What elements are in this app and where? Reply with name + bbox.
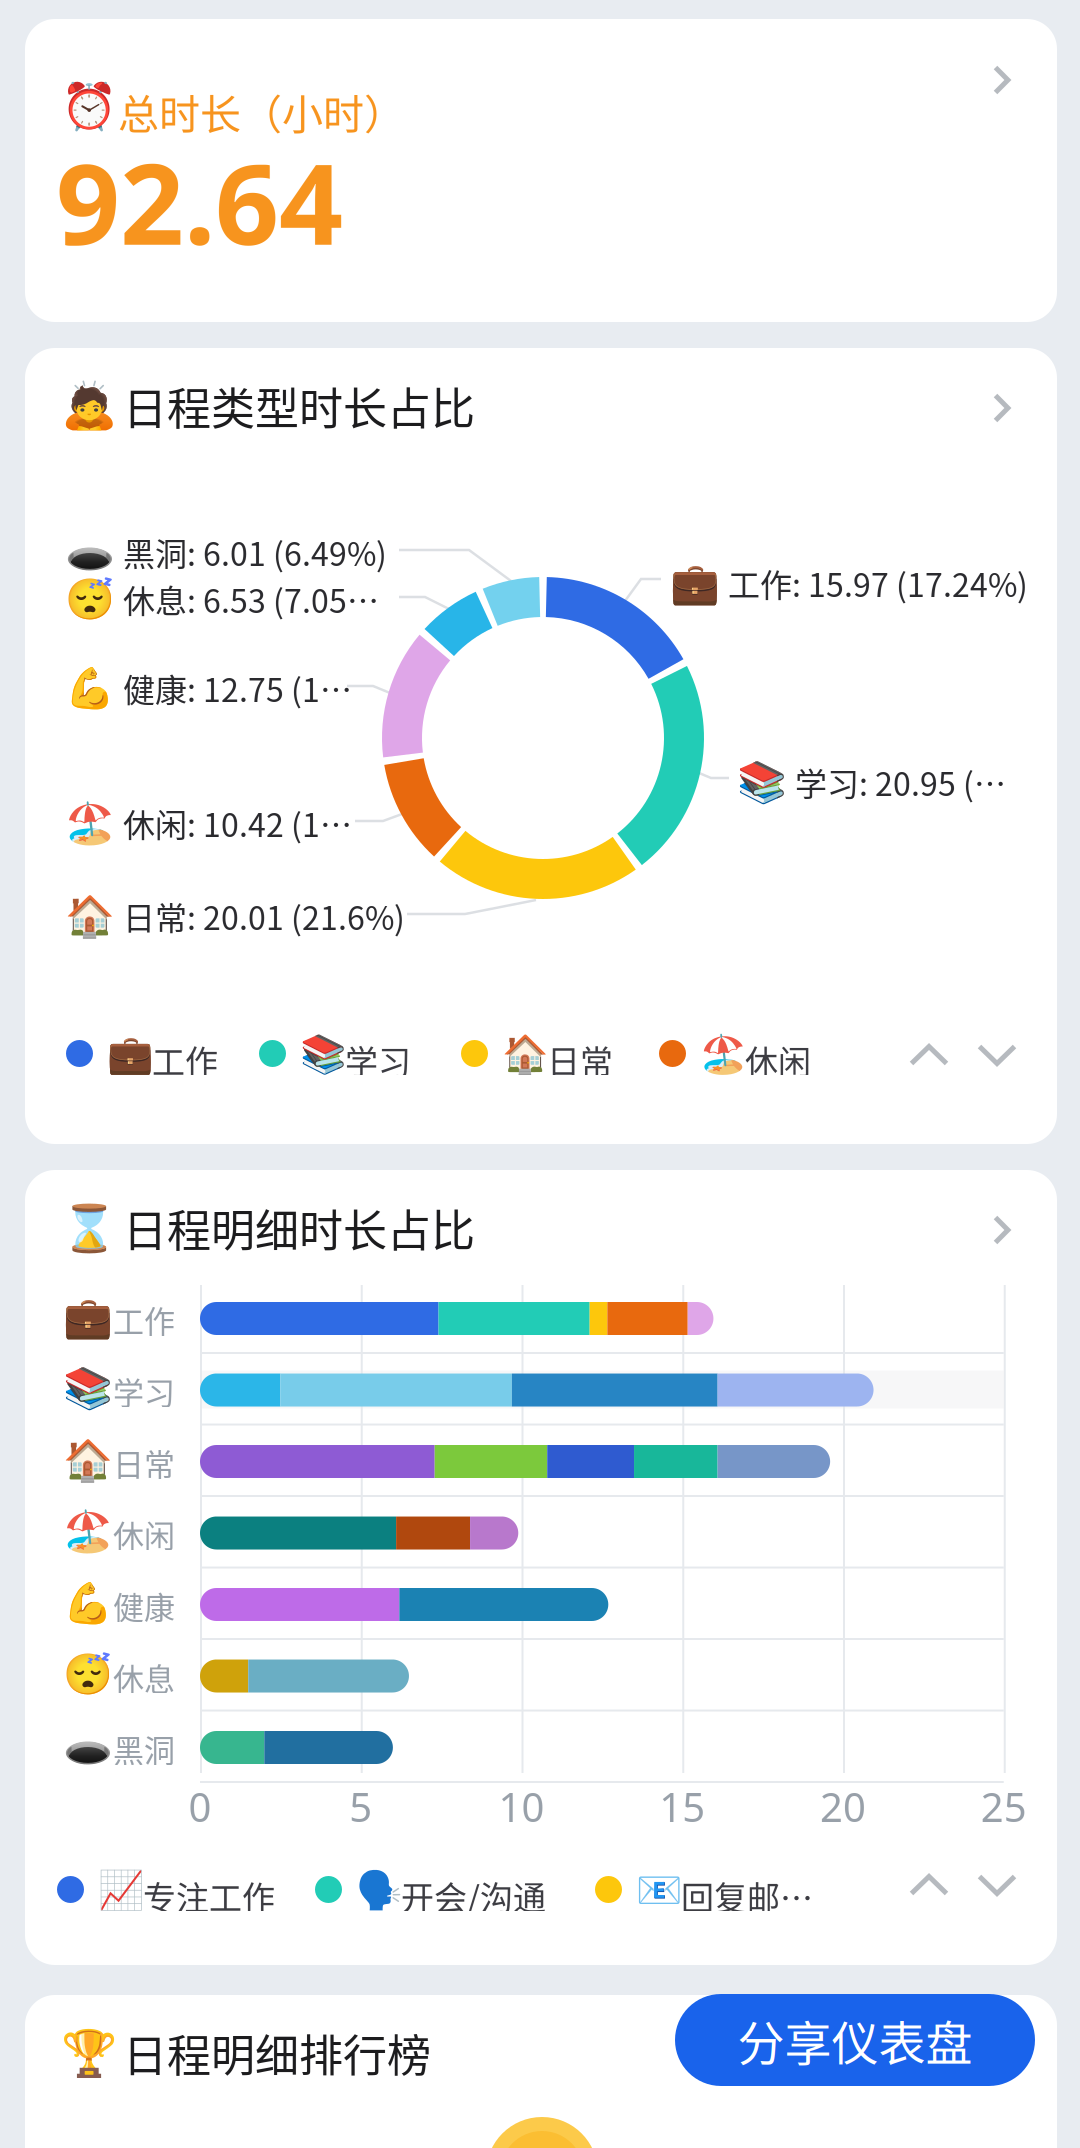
staticText: 日程明细时长占比 — [123, 1196, 475, 1260]
staticText: 休闲: 10.42 (1… — [123, 800, 352, 846]
button[interactable]: Expand — [977, 1874, 1017, 1896]
staticText: 5 — [349, 1780, 372, 1833]
staticText: 20 — [820, 1780, 866, 1833]
button[interactable]: 📈 — [57, 1867, 317, 1911]
staticText: 休闲 — [113, 1511, 175, 1556]
staticText: 10 — [498, 1780, 544, 1833]
staticText: 🙇 — [61, 380, 117, 432]
staticText: ⌛ — [61, 1203, 117, 1255]
staticText: 🏖️ — [700, 1033, 746, 1076]
staticText: 🗣️ — [356, 1869, 402, 1912]
staticText: 💪 — [65, 665, 115, 711]
staticText: 🏖️ — [65, 800, 115, 846]
staticText: 92.64 — [56, 127, 343, 276]
staticText: 🏠 — [63, 1437, 113, 1483]
staticText: 学习: 20.95 (… — [795, 759, 1006, 805]
staticText: 📚 — [63, 1365, 113, 1411]
staticText: 日程明细排行榜 — [123, 2021, 431, 2085]
button[interactable]: 🗣️ — [315, 1867, 595, 1911]
button[interactable]: 🙇 — [25, 348, 1057, 468]
staticText: 25 — [981, 1780, 1027, 1833]
staticText: 🕳️ — [63, 1723, 113, 1769]
staticText: 🏖️ — [63, 1508, 113, 1554]
staticText: 健康: 12.75 (1… — [123, 665, 352, 711]
staticText: 💼 — [107, 1033, 153, 1076]
button[interactable]: 📧 — [595, 1867, 855, 1911]
staticText: 📚 — [737, 759, 787, 805]
staticText: 🏠 — [65, 893, 115, 939]
staticText: 健康 — [113, 1583, 175, 1628]
staticText: 工作: 15.97 (17.24%) — [728, 560, 1028, 606]
staticText: 总时长（小时） — [118, 82, 405, 141]
staticText: 0 — [188, 1780, 211, 1833]
button[interactable]: 📚 — [259, 1031, 439, 1075]
staticText: ⏰ — [61, 81, 117, 133]
staticText: 学习 — [113, 1368, 175, 1413]
staticText: 🕳️ — [65, 529, 115, 575]
button[interactable]: Expand — [977, 1044, 1017, 1066]
staticText: 日程类型时长占比 — [123, 374, 475, 438]
staticText: 黑洞 — [113, 1726, 175, 1771]
staticText: 日常: 20.01 (21.6%) — [123, 893, 405, 939]
button[interactable]: 🏖️ — [659, 1031, 839, 1075]
staticText: 📧 — [636, 1869, 682, 1912]
staticText: 黑洞: 6.01 (6.49%) — [123, 529, 387, 575]
staticText: 专注工作 — [143, 1872, 275, 1920]
button[interactable]: Details — [993, 65, 1010, 95]
staticText: 日常 — [113, 1440, 175, 1485]
staticText: 📈 — [98, 1869, 144, 1912]
staticText: 学习 — [345, 1036, 411, 1084]
staticText: 休闲 — [745, 1036, 811, 1084]
button[interactable]: 分享仪表盘 — [675, 1994, 1035, 2086]
button[interactable]: Collapse — [909, 1874, 949, 1896]
staticText: 日常 — [547, 1036, 613, 1084]
staticText: 15 — [659, 1780, 705, 1833]
staticText: 休息: 6.53 (7.05… — [123, 576, 379, 622]
staticText: 📚 — [300, 1033, 346, 1076]
staticText: 💼 — [63, 1294, 113, 1340]
staticText: 工作 — [152, 1036, 218, 1084]
button[interactable]: 💼 — [66, 1031, 246, 1075]
staticText: 🏆 — [61, 2028, 117, 2080]
staticText: 开会/沟通 — [401, 1872, 546, 1920]
staticText: 💼 — [670, 560, 720, 606]
staticText: 休息 — [113, 1654, 175, 1699]
button[interactable]: ⌛ — [25, 1170, 1057, 1290]
staticText: 😴 — [65, 576, 115, 622]
staticText: 💪 — [63, 1580, 113, 1626]
button[interactable]: 🏆 — [25, 1995, 1057, 2115]
button[interactable]: 🏠 — [461, 1031, 641, 1075]
staticText: 回复邮… — [681, 1872, 813, 1920]
staticText: 😴 — [63, 1651, 113, 1697]
button[interactable]: Collapse — [909, 1044, 949, 1066]
staticText: 工作 — [113, 1297, 175, 1342]
staticText: 🏠 — [502, 1033, 548, 1076]
staticText: 分享仪表盘 — [737, 2006, 972, 2074]
